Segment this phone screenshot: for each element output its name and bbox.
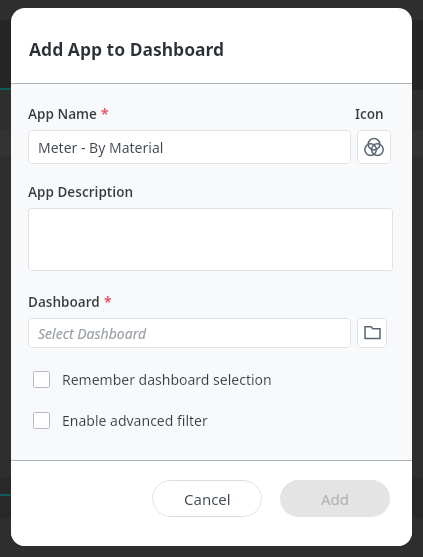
button[interactable]: Meter - By Material	[28, 130, 351, 164]
staticText: Remember dashboard selection	[62, 370, 272, 389]
staticText: App Name	[28, 105, 97, 123]
button[interactable]: Choose icon	[357, 130, 391, 164]
staticText: Add App to Dashboard	[29, 37, 225, 61]
staticText: Add	[321, 489, 350, 509]
staticText: *	[101, 104, 109, 123]
staticText: Meter - By Material	[38, 138, 164, 157]
staticText: Icon	[355, 105, 384, 123]
button[interactable]: Select Dashboard	[28, 318, 351, 348]
button[interactable]: Browse dashboards	[357, 318, 387, 348]
button[interactable]: Remember dashboard selection	[33, 370, 272, 389]
button[interactable]: Enable advanced filter	[33, 411, 208, 430]
staticText: Cancel	[184, 489, 231, 509]
button[interactable]	[28, 208, 393, 271]
button[interactable]: Add	[280, 480, 390, 517]
staticText: Dashboard	[28, 293, 100, 311]
staticText: App Description	[28, 183, 134, 201]
staticText: Enable advanced filter	[62, 411, 208, 430]
button[interactable]: Cancel	[152, 480, 262, 517]
staticText: Select Dashboard	[38, 324, 147, 343]
staticText: *	[104, 292, 112, 311]
